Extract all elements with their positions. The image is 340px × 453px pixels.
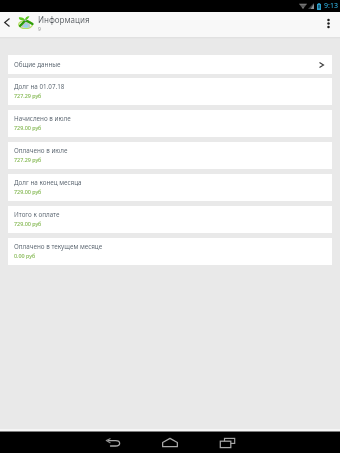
staticText: Оплачено в текущем месяце [14,242,103,251]
staticText: Долг на 01.07.18 [14,82,65,91]
button[interactable]: Итого к оплате [8,206,332,233]
staticText: 727.29 руб [14,92,42,99]
button[interactable]: More options [316,12,340,33]
staticText: 9:13 [324,1,338,11]
staticText: 9 [38,26,41,33]
button[interactable]: Back [0,12,13,33]
button[interactable]: Общие данные [8,55,332,74]
button[interactable]: Долг на 01.07.18 [8,78,332,105]
staticText: 729.00 руб [14,124,42,131]
staticText: 729.00 руб [14,220,42,227]
staticText: 729.00 руб [14,188,42,195]
staticText: Информация [38,14,90,25]
button[interactable]: Долг на конец месяца [8,174,332,201]
staticText: Итого к оплате [14,210,60,219]
staticText: 727.29 руб [14,156,42,163]
button[interactable]: Оплачено в июле [8,142,332,169]
button[interactable]: Home [158,432,182,453]
button[interactable]: Начислено в июле [8,110,332,137]
staticText: Оплачено в июле [14,146,68,155]
staticText: Общие данные [14,60,61,69]
button[interactable]: Recent apps [215,432,239,453]
staticText: 0.00 руб [14,252,36,259]
staticText: Долг на конец месяца [14,178,82,187]
staticText: Начислено в июле [14,114,71,123]
button[interactable]: Оплачено в текущем месяце [8,238,332,265]
button[interactable]: Back [101,432,125,453]
